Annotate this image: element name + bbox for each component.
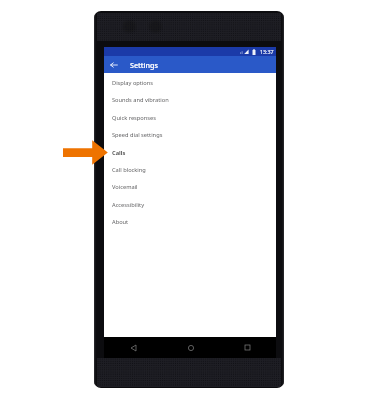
button[interactable]: Back (104, 56, 123, 73)
staticText: Display options (112, 79, 154, 87)
staticText: Voicemail (112, 183, 138, 191)
button[interactable]: Quick responses (104, 109, 276, 126)
button[interactable]: Speed dial settings (104, 126, 276, 143)
button[interactable]: About (104, 213, 276, 230)
button[interactable]: Accessibility (104, 196, 276, 213)
button[interactable]: Calls (104, 144, 276, 161)
staticText: 13:37 (260, 48, 274, 55)
staticText: Sounds and vibration (112, 96, 169, 104)
staticText: Speed dial settings (112, 131, 163, 139)
button[interactable]: Home (162, 337, 219, 358)
staticText: Call blocking (112, 166, 146, 174)
staticText: Settings (130, 60, 158, 70)
button[interactable]: Back (104, 337, 162, 358)
button[interactable]: Recents (219, 337, 276, 358)
staticText: Quick responses (112, 114, 156, 122)
staticText: About (112, 218, 129, 226)
button[interactable]: Sounds and vibration (104, 91, 276, 108)
staticText: Calls (112, 149, 126, 157)
button[interactable]: Display options (104, 74, 276, 91)
button[interactable]: Call blocking (104, 161, 276, 178)
button[interactable]: Voicemail (104, 178, 276, 195)
staticText: Accessibility (112, 201, 145, 209)
